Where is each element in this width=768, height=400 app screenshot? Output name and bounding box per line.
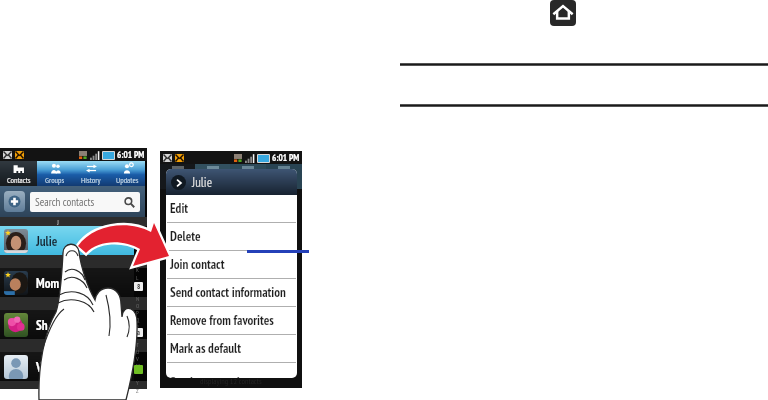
staticText: V	[36, 359, 43, 376]
button[interactable]: Updates	[109, 161, 145, 186]
staticText: Delete	[170, 228, 201, 245]
staticText: L	[136, 274, 139, 282]
staticText: V	[136, 355, 139, 363]
staticText: 8	[137, 282, 141, 291]
staticText: O	[136, 302, 140, 310]
staticText: Search contacts	[35, 195, 95, 209]
button[interactable]: Mom	[0, 268, 134, 297]
button[interactable]: Remove from favorites	[166, 307, 297, 335]
staticText: Send contact via...	[170, 374, 254, 378]
staticText: Updates	[116, 175, 139, 185]
staticText: Edit	[170, 200, 189, 217]
staticText: Sh	[36, 317, 48, 334]
staticText: Mom	[36, 275, 60, 292]
staticText: T	[136, 341, 139, 349]
button[interactable]: Send contact via...	[166, 363, 297, 377]
staticText: R	[136, 323, 139, 331]
staticText: Julie	[36, 233, 58, 250]
staticText: Mark as default	[170, 340, 242, 357]
staticText: Send contact information	[170, 284, 286, 301]
staticText: History	[81, 175, 101, 185]
button[interactable]: Julie	[0, 226, 134, 255]
staticText: displaying 12 contacts	[200, 376, 262, 386]
button[interactable]: Groups	[37, 161, 73, 186]
button[interactable]: Send contact information	[166, 279, 297, 307]
button[interactable]: Add contact	[4, 191, 25, 212]
button[interactable]: Delete	[166, 223, 297, 251]
staticText: J	[136, 258, 138, 266]
staticText: J	[57, 217, 59, 226]
staticText: U	[136, 348, 140, 356]
staticText: Z	[136, 387, 139, 395]
button[interactable]: Home	[550, 0, 576, 26]
button[interactable]: History	[73, 161, 109, 186]
staticText: Contacts	[7, 175, 31, 185]
staticText: P	[136, 309, 139, 317]
button[interactable]: V	[0, 352, 134, 381]
button[interactable]: Contacts	[0, 161, 37, 186]
staticText: 6:01 PM	[117, 149, 145, 161]
button[interactable]: Sh	[0, 310, 134, 339]
staticText: W	[136, 362, 141, 370]
button[interactable]: Join contact	[166, 251, 297, 279]
staticText: Join contact	[170, 256, 225, 273]
staticText: a	[137, 328, 140, 337]
staticText: Groups	[45, 175, 65, 185]
button[interactable]: Search contacts	[30, 192, 140, 212]
button[interactable]: Julie	[166, 169, 297, 195]
staticText: K	[136, 266, 139, 274]
staticText: N	[136, 295, 140, 303]
staticText: Y	[136, 379, 139, 387]
staticText: Remove from favorites	[170, 312, 274, 329]
button[interactable]: Mark as default	[166, 335, 297, 363]
staticText: 6:01 PM	[272, 152, 300, 164]
button[interactable]: Edit	[166, 195, 297, 223]
staticText: Q	[136, 316, 140, 324]
staticText: Julie	[192, 174, 212, 191]
